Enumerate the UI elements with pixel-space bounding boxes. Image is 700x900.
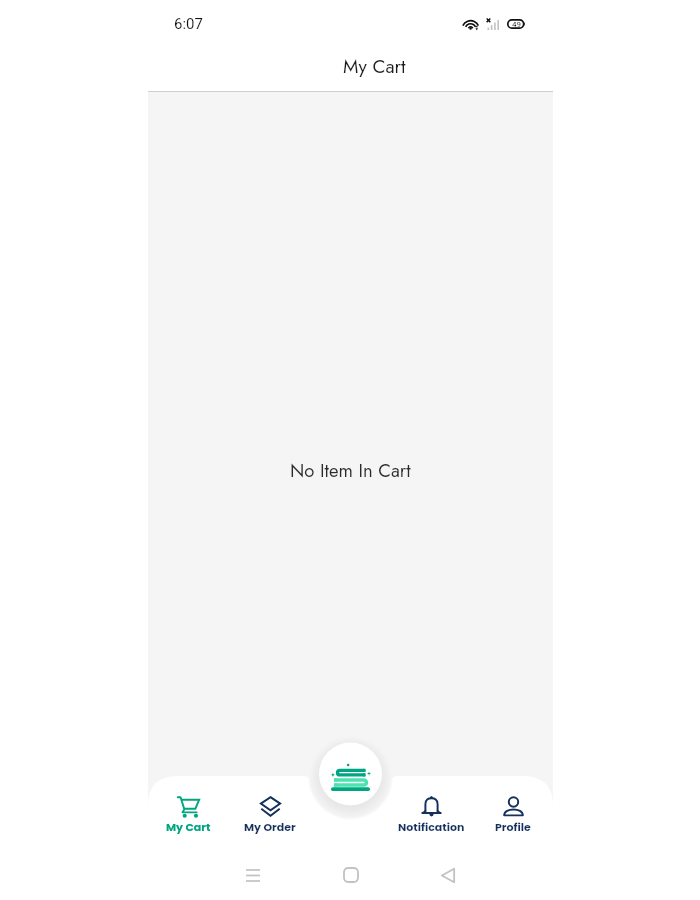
- staticText: My Order: [244, 819, 296, 834]
- button[interactable]: New laundry order: [319, 743, 382, 806]
- staticText: No Item In Cart: [290, 457, 411, 484]
- button[interactable]: Notification: [391, 778, 472, 848]
- button[interactable]: My Cart: [148, 778, 229, 848]
- staticText: My Cart: [166, 819, 211, 834]
- button[interactable]: Home: [331, 855, 371, 895]
- button[interactable]: Recent apps: [233, 855, 273, 895]
- button[interactable]: Profile: [472, 778, 553, 848]
- staticText: My Cart: [343, 53, 406, 80]
- staticText: Profile: [495, 819, 531, 834]
- button[interactable]: My Order: [229, 778, 310, 848]
- staticText: 6:07: [174, 15, 203, 33]
- staticText: 49: [512, 20, 521, 29]
- button[interactable]: Back: [428, 855, 468, 895]
- staticText: Notification: [398, 819, 465, 834]
